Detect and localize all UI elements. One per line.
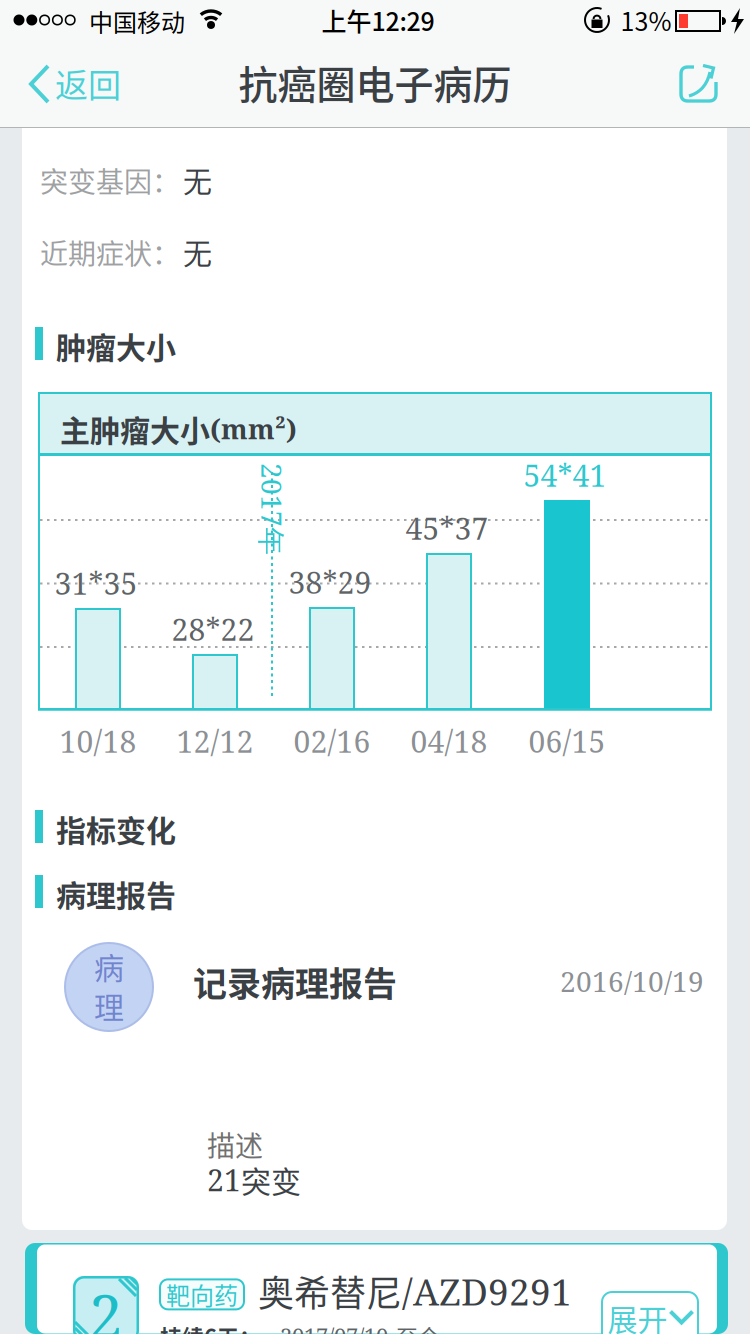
staticText: 展开 (607, 1296, 667, 1334)
staticText: 2017/07/10 (280, 1321, 388, 1334)
staticText: 12/12 (176, 721, 253, 761)
staticText: 上午12:29 (321, 2, 434, 38)
staticText: 45*37 (405, 508, 488, 548)
staticText: -至今 (388, 1320, 440, 1334)
staticText: 38*29 (288, 562, 371, 602)
staticText: 31*35 (54, 563, 137, 603)
staticText: (mm²) (210, 410, 297, 447)
staticText: 54*41 (523, 455, 606, 495)
staticText: 13% (620, 2, 671, 38)
staticText: 2 (89, 1274, 123, 1334)
staticText: 2017年 (226, 490, 318, 528)
staticText: 06/15 (528, 721, 605, 761)
staticText: 2016/10/19 (560, 962, 704, 1000)
staticText: 21 (207, 1159, 241, 1200)
staticText: 奥希替尼 (258, 1265, 402, 1317)
staticText: /AZD9291 (402, 1266, 572, 1316)
staticText: 近期症状： (40, 232, 180, 272)
staticText: 记录病理报告 (193, 957, 397, 1006)
staticText: 突变 (241, 1158, 301, 1201)
staticText: 04/18 (410, 721, 487, 761)
staticText: 病 (94, 945, 124, 988)
staticText: 无 (183, 159, 212, 201)
staticText: 10/18 (59, 721, 136, 761)
staticText: 主肿瘤大小 (60, 407, 210, 450)
staticText: 指标变化 (56, 807, 176, 850)
staticText: 病理报告 (56, 872, 176, 915)
staticText: 抗癌圈电子病历 (238, 54, 511, 110)
staticText: 描述 (207, 1124, 263, 1164)
staticText: 肿瘤大小 (56, 324, 176, 367)
staticText: 返回 (55, 59, 121, 107)
staticText: 无 (183, 231, 212, 273)
staticText: 理 (94, 984, 124, 1027)
staticText: 靶向药 (166, 1277, 238, 1312)
staticText: 02/16 (293, 721, 370, 761)
staticText: 28*22 (171, 609, 254, 649)
staticText: 突变基因： (40, 160, 180, 200)
staticText: 中国移动 (89, 4, 185, 38)
staticText: 持续6天： (160, 1320, 261, 1334)
